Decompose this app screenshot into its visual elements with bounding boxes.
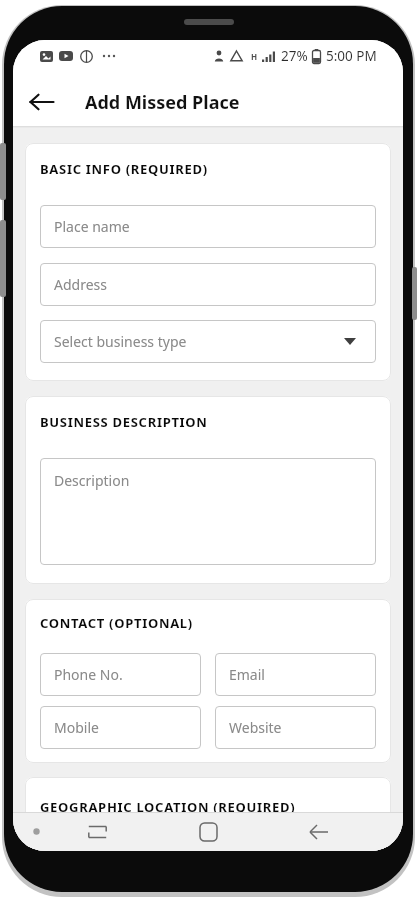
button[interactable]: Phone No. — [40, 653, 201, 696]
staticText: Place name — [54, 217, 130, 236]
button[interactable]: Email — [215, 653, 376, 696]
staticText: BUSINESS DESCRIPTION — [40, 413, 208, 431]
staticText: 5:00 PM — [326, 47, 377, 65]
staticText: Add Missed Place — [85, 90, 240, 115]
staticText: Select business type — [54, 332, 187, 351]
button[interactable]: Address — [40, 263, 376, 306]
button[interactable]: Mobile — [40, 706, 201, 749]
staticText: Website — [229, 718, 282, 737]
staticText: H — [251, 51, 258, 62]
staticText: Address — [54, 275, 107, 294]
staticText: GEOGRAPHIC LOCATION (REQUIRED) — [40, 798, 296, 816]
button[interactable] — [295, 812, 343, 851]
button[interactable]: Website — [215, 706, 376, 749]
button[interactable]: Select business type — [40, 320, 376, 363]
staticText: 27% — [281, 47, 308, 65]
button[interactable] — [184, 812, 232, 851]
staticText: Email — [229, 665, 265, 684]
button[interactable] — [73, 812, 121, 851]
button[interactable]: Description — [40, 458, 376, 565]
button[interactable] — [13, 78, 71, 126]
staticText: BASIC INFO (REQUIRED) — [40, 160, 208, 178]
staticText: Mobile — [54, 718, 99, 737]
staticText: CONTACT (OPTIONAL) — [40, 614, 193, 632]
button[interactable]: Place name — [40, 205, 376, 248]
staticText: Description — [54, 471, 130, 490]
staticText: Phone No. — [54, 665, 123, 684]
